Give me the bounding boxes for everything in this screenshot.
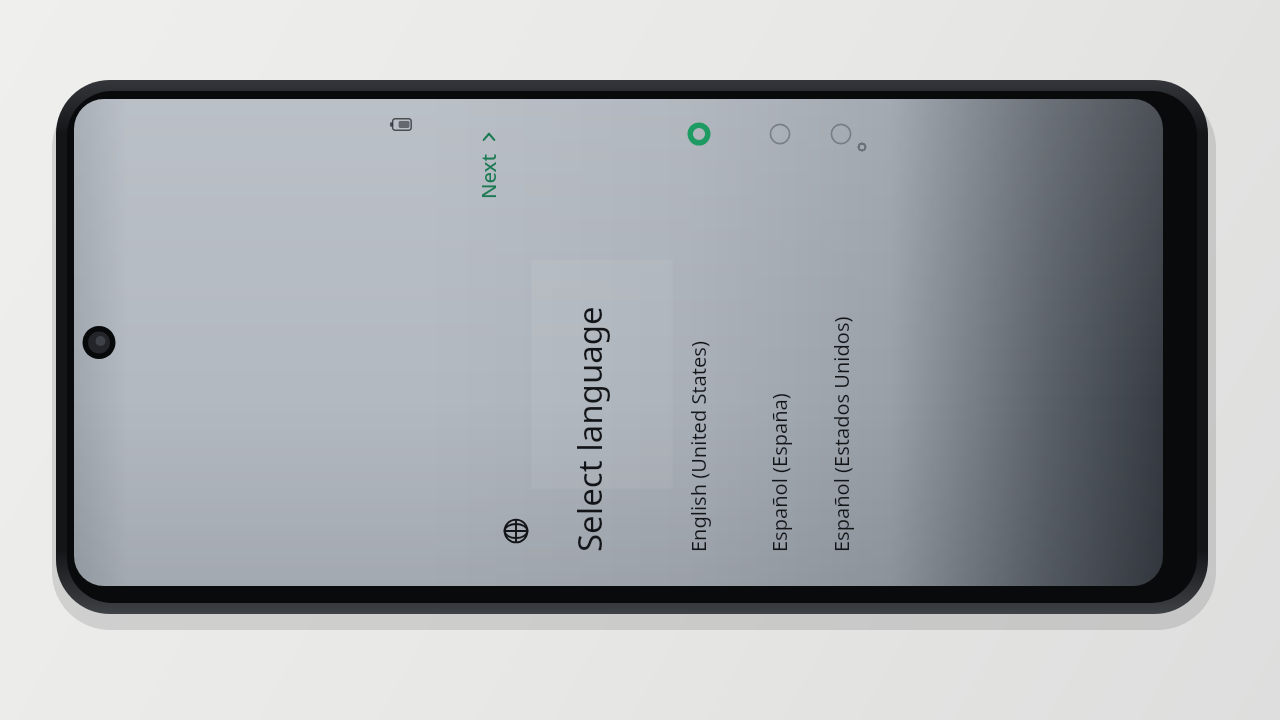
staticText: Español (España) — [766, 157, 793, 552]
staticText: Select language — [567, 306, 612, 552]
staticText: English (United States) — [685, 157, 712, 552]
staticText: Español (Estados Unidos) — [828, 157, 855, 552]
button[interactable]: Español (Estados Unidos) — [820, 99, 862, 586]
staticText: Next — [475, 153, 502, 199]
button[interactable]: Vision settings — [493, 508, 539, 554]
button[interactable]: Next — [467, 115, 510, 213]
button[interactable]: English (United States) — [658, 99, 739, 586]
button[interactable]: Español (España) — [739, 99, 820, 586]
